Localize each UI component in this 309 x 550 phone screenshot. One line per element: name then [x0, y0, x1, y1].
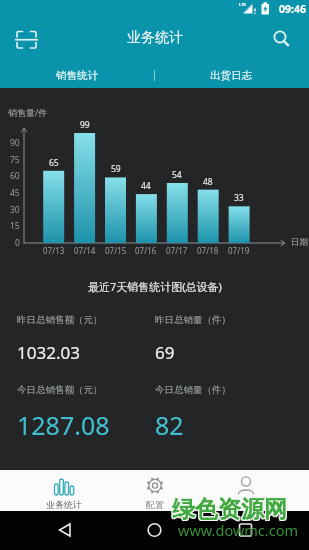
staticText: 15	[10, 220, 20, 232]
button[interactable]: 销售统计	[0, 58, 154, 88]
staticText: 日期	[291, 237, 308, 248]
staticText: 33	[234, 192, 244, 204]
staticText: 销售统计	[56, 69, 98, 82]
button[interactable]	[206, 511, 309, 550]
staticText: 绿色资源网	[173, 495, 288, 524]
staticText: 业务统计	[127, 29, 183, 47]
button[interactable]	[12, 27, 40, 51]
staticText: 今日总销售额（元）	[17, 384, 103, 396]
button[interactable]	[268, 25, 298, 53]
staticText: 75	[10, 154, 20, 166]
staticText: 07/16	[135, 245, 157, 256]
staticText: 07/14	[74, 245, 96, 256]
staticText: 45	[10, 187, 20, 199]
staticText: 09:46	[279, 2, 306, 16]
staticText: 65	[49, 157, 59, 169]
staticText: 82	[155, 408, 184, 442]
button[interactable]	[200, 470, 291, 511]
button[interactable]: 业务统计	[18, 470, 109, 511]
staticText: 昨日总销售额（元）	[17, 314, 103, 326]
staticText: 配置	[146, 499, 164, 510]
staticText: 0	[15, 237, 20, 249]
staticText: 69	[155, 341, 175, 364]
staticText: 1287.08	[17, 408, 110, 442]
staticText: 90	[10, 137, 20, 149]
staticText: 绿色资源网	[171, 494, 286, 523]
staticText: 48	[203, 176, 213, 188]
staticText: 60	[10, 170, 20, 182]
staticText: 绿色资源网	[172, 494, 287, 523]
staticText: 07/18	[197, 245, 219, 256]
staticText: 1032.03	[17, 341, 80, 364]
staticText: 绿色资源网	[172, 495, 287, 524]
staticText: 07/17	[166, 245, 188, 256]
staticText: 99	[80, 119, 90, 131]
staticText: 07/13	[43, 245, 65, 256]
staticText: 绿色资源网	[173, 494, 288, 523]
staticText: 出货日志	[210, 69, 252, 82]
staticText: 业务统计	[46, 499, 82, 510]
staticText: 今日总销量（件）	[155, 384, 231, 396]
staticText: LTE	[239, 2, 246, 7]
staticText: 44	[141, 180, 151, 192]
button[interactable]	[103, 511, 206, 550]
staticText: www.dowmc.com	[178, 520, 298, 540]
button[interactable]	[0, 511, 103, 550]
staticText: 54	[172, 169, 182, 181]
staticText: 30	[10, 204, 20, 216]
staticText: 最近7天销售统计图(总设备)	[88, 279, 222, 294]
staticText: 绿色资源网	[171, 495, 286, 524]
staticText: 07/19	[228, 245, 250, 256]
staticText: 59	[111, 163, 121, 175]
staticText: 绿色资源网	[171, 496, 286, 525]
staticText: 昨日总销量（件）	[155, 314, 231, 326]
staticText: 07/15	[105, 245, 127, 256]
button[interactable]: 配置	[109, 470, 200, 511]
staticText: 绿色资源网	[173, 496, 288, 525]
staticText: 绿色资源网	[172, 496, 287, 525]
button[interactable]: 出货日志	[154, 58, 309, 88]
staticText: 销售量/件	[8, 106, 48, 118]
